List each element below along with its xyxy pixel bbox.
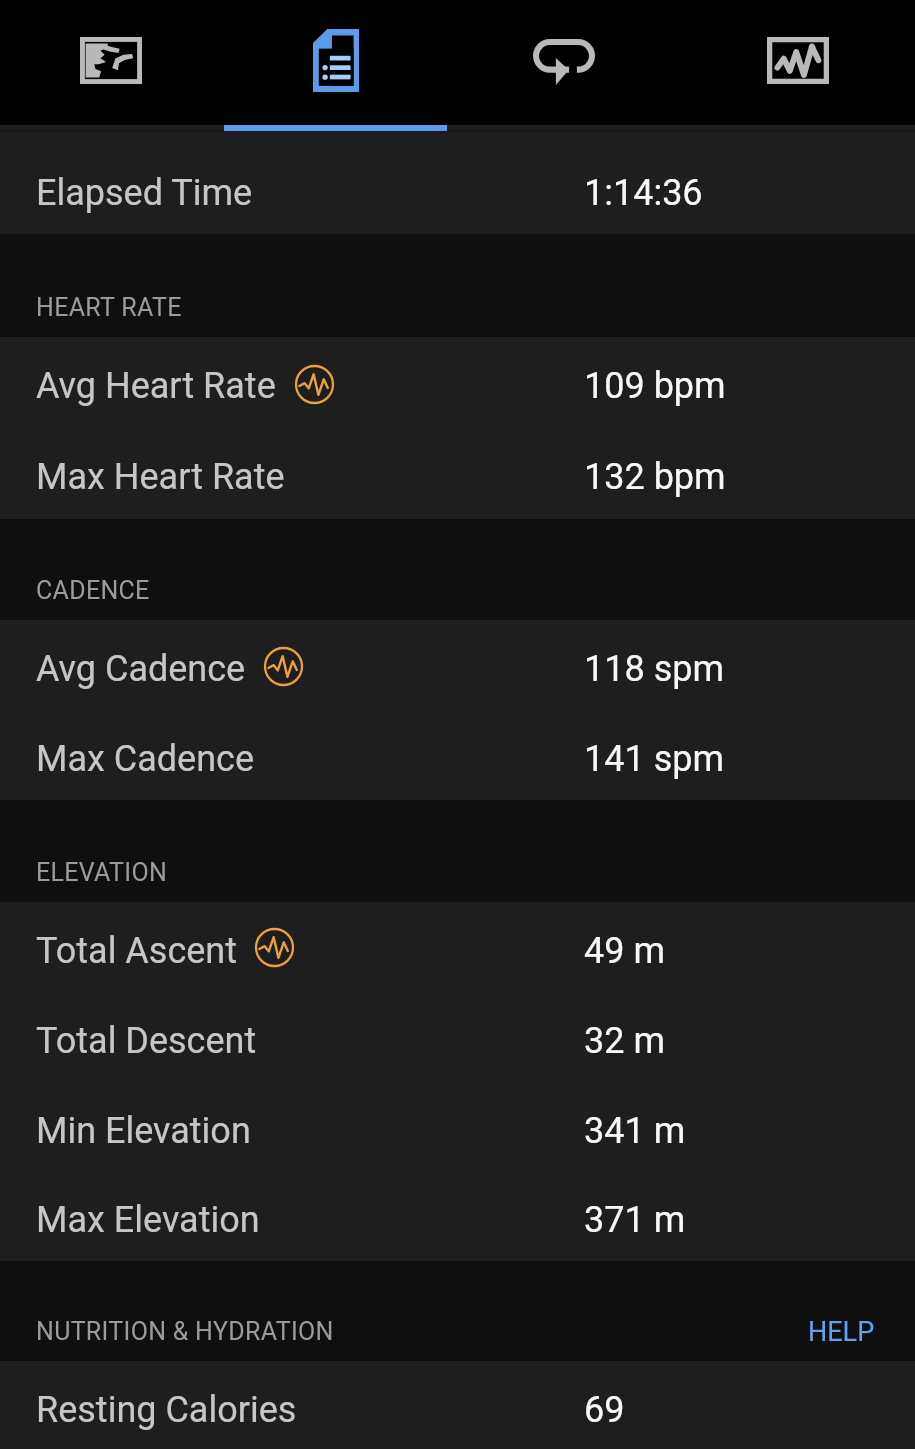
staticText: Total Descent bbox=[36, 1020, 257, 1062]
button[interactable]: Total Descent bbox=[0, 992, 915, 1082]
staticText: 109 bpm bbox=[584, 365, 726, 407]
button[interactable]: Max Cadence bbox=[0, 710, 915, 800]
button[interactable]: Avg Heart Rate bbox=[0, 337, 915, 428]
staticText: HEART RATE bbox=[36, 293, 182, 322]
staticText: 69 bbox=[584, 1389, 625, 1431]
button[interactable]: Resting Calories bbox=[0, 1361, 915, 1449]
button[interactable]: Workout details bbox=[228, 0, 457, 125]
staticText: 341 m bbox=[584, 1110, 686, 1152]
button[interactable]: Total Ascent bbox=[0, 902, 915, 992]
button[interactable]: Charts bbox=[686, 0, 915, 125]
button[interactable]: Max Heart Rate bbox=[0, 428, 915, 519]
staticText: Elapsed Time bbox=[36, 172, 253, 214]
staticText: Avg Cadence bbox=[36, 648, 246, 690]
staticText: Total Ascent bbox=[36, 930, 237, 972]
staticText: ELEVATION bbox=[36, 858, 168, 887]
button[interactable]: Avg Cadence bbox=[0, 620, 915, 710]
button[interactable]: Map bbox=[0, 0, 228, 125]
button[interactable]: Max Elevation bbox=[0, 1171, 915, 1261]
button[interactable]: Min Elevation bbox=[0, 1082, 915, 1171]
button[interactable]: HELP bbox=[808, 1316, 915, 1361]
staticText: Min Elevation bbox=[36, 1110, 251, 1152]
staticText: Resting Calories bbox=[36, 1389, 297, 1431]
staticText: Avg Heart Rate bbox=[36, 365, 276, 407]
staticText: Max Elevation bbox=[36, 1199, 260, 1241]
staticText: 32 m bbox=[584, 1020, 665, 1062]
staticText: 132 bpm bbox=[584, 456, 726, 498]
staticText: NUTRITION & HYDRATION bbox=[36, 1317, 334, 1346]
staticText: HELP bbox=[808, 1316, 875, 1348]
staticText: 118 spm bbox=[584, 648, 724, 690]
staticText: Max Heart Rate bbox=[36, 456, 285, 498]
button[interactable]: Elapsed Time bbox=[0, 144, 915, 234]
staticText: 141 spm bbox=[584, 738, 724, 780]
staticText: Max Cadence bbox=[36, 738, 255, 780]
staticText: 1:14:36 bbox=[584, 172, 703, 214]
staticText: 49 m bbox=[584, 930, 665, 972]
staticText: 371 m bbox=[584, 1199, 686, 1241]
button[interactable]: Laps bbox=[457, 0, 686, 125]
staticText: CADENCE bbox=[36, 576, 150, 605]
